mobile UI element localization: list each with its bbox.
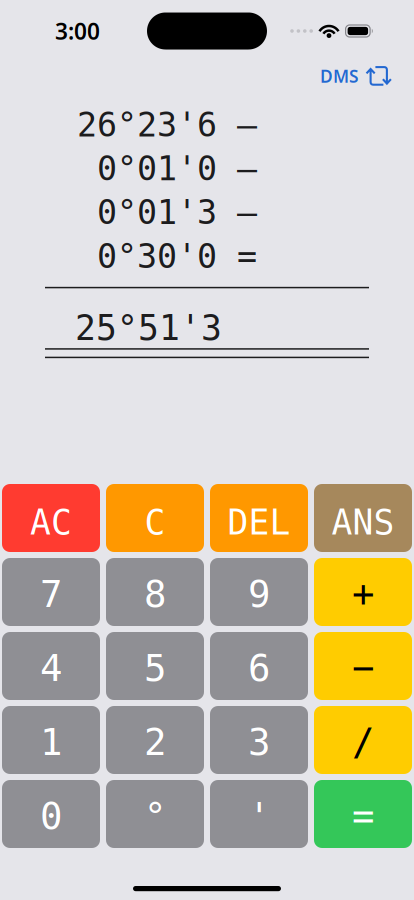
staticText: AC <box>30 503 72 542</box>
button[interactable]: 6 <box>210 632 308 700</box>
staticText: + <box>352 572 374 615</box>
staticText: ' <box>248 795 270 837</box>
staticText: 5 <box>144 647 166 689</box>
button[interactable]: ANS <box>314 484 412 552</box>
button[interactable]: DEL <box>210 484 308 552</box>
staticText: C <box>144 503 165 542</box>
button[interactable]: 9 <box>210 558 308 626</box>
staticText: 0 <box>40 795 62 837</box>
staticText: 2 <box>144 721 166 763</box>
button[interactable]: ' <box>210 780 308 848</box>
staticText: DEL <box>227 503 290 542</box>
button[interactable]: 1 <box>2 706 100 774</box>
staticText: 0°01'3 – <box>97 194 257 231</box>
staticText: 6 <box>248 647 270 689</box>
staticText: 26°23'6 – <box>77 106 257 144</box>
button[interactable]: AC <box>2 484 100 552</box>
staticText: / <box>352 720 374 763</box>
staticText: 0°01'0 – <box>97 150 257 188</box>
button[interactable]: 5 <box>106 632 204 700</box>
staticText: 25°51'3 <box>75 308 222 348</box>
button[interactable]: 8 <box>106 558 204 626</box>
button[interactable]: 0 <box>2 780 100 848</box>
staticText: 8 <box>144 573 166 615</box>
staticText: ANS <box>331 503 394 542</box>
button[interactable]: 2 <box>106 706 204 774</box>
staticText: DMS <box>320 64 359 87</box>
button[interactable]: = <box>314 780 412 848</box>
staticText: 3:00 <box>55 16 100 46</box>
button[interactable]: 4 <box>2 632 100 700</box>
staticText: 3 <box>248 721 270 763</box>
staticText: 1 <box>40 721 62 763</box>
button[interactable]: − <box>314 632 412 700</box>
staticText: = <box>352 794 374 837</box>
button[interactable]: / <box>314 706 412 774</box>
staticText: 9 <box>248 573 270 615</box>
staticText: 4 <box>40 647 62 689</box>
button[interactable]: DMS <box>320 64 392 88</box>
staticText: ° <box>144 795 166 837</box>
button[interactable]: + <box>314 558 412 626</box>
button[interactable]: ° <box>106 780 204 848</box>
button[interactable]: 3 <box>210 706 308 774</box>
button[interactable]: C <box>106 484 204 552</box>
staticText: 0°30'0 = <box>97 237 257 275</box>
staticText: 7 <box>40 573 62 615</box>
button[interactable]: 7 <box>2 558 100 626</box>
staticText: − <box>352 646 374 689</box>
